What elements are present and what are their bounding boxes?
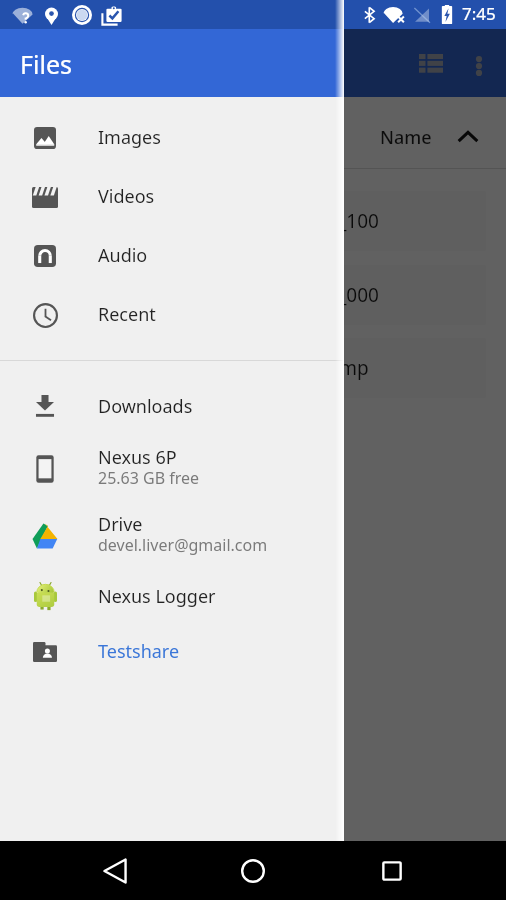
staticText: Videos [98,184,155,209]
button[interactable]: Back [91,847,139,895]
staticText: Images [98,125,161,150]
button[interactable]: 2015_1204_1234567_screenshot.bmp [20,338,486,398]
staticText: Downloads [98,394,193,419]
staticText: Files [20,47,72,81]
button[interactable]: Recents [368,847,416,895]
staticText: devel.liver@gmail.com [98,534,268,556]
staticText: IMG_20151204_192000_12345678_000 [36,282,379,308]
staticText: Testshare [98,639,180,664]
button[interactable]: Downloads [0,377,344,435]
button[interactable]: IMG_20151203_191100_12345678_100 [20,191,486,251]
button[interactable]: Home [229,847,277,895]
button[interactable]: Audio [0,226,344,285]
staticText: Drive [98,512,143,537]
staticText: 2015_1204_1234567_screenshot.bmp [36,355,369,381]
button[interactable]: IMG_20151204_192000_12345678_000 [20,265,486,325]
button[interactable]: More options [455,42,503,90]
staticText: Nexus 6P [98,445,177,470]
staticText: Audio [98,243,148,268]
button[interactable]: Drive [0,502,344,569]
button[interactable]: Sort ascending [452,121,484,153]
button[interactable]: Recent [0,285,344,344]
button[interactable]: Nexus Logger [0,569,344,623]
button[interactable]: Nexus 6P [0,435,344,502]
staticText: Name [380,125,432,150]
staticText: Recent [98,302,156,327]
button[interactable]: Testshare [0,623,344,680]
button[interactable]: Videos [0,167,344,226]
button[interactable]: Images [0,108,344,167]
button[interactable]: List view [407,42,455,90]
staticText: IMG_20151203_191100_12345678_100 [36,208,379,234]
staticText: 25.63 GB free [98,467,200,489]
staticText: 7:45 [462,2,496,25]
staticText: Nexus Logger [98,584,216,609]
